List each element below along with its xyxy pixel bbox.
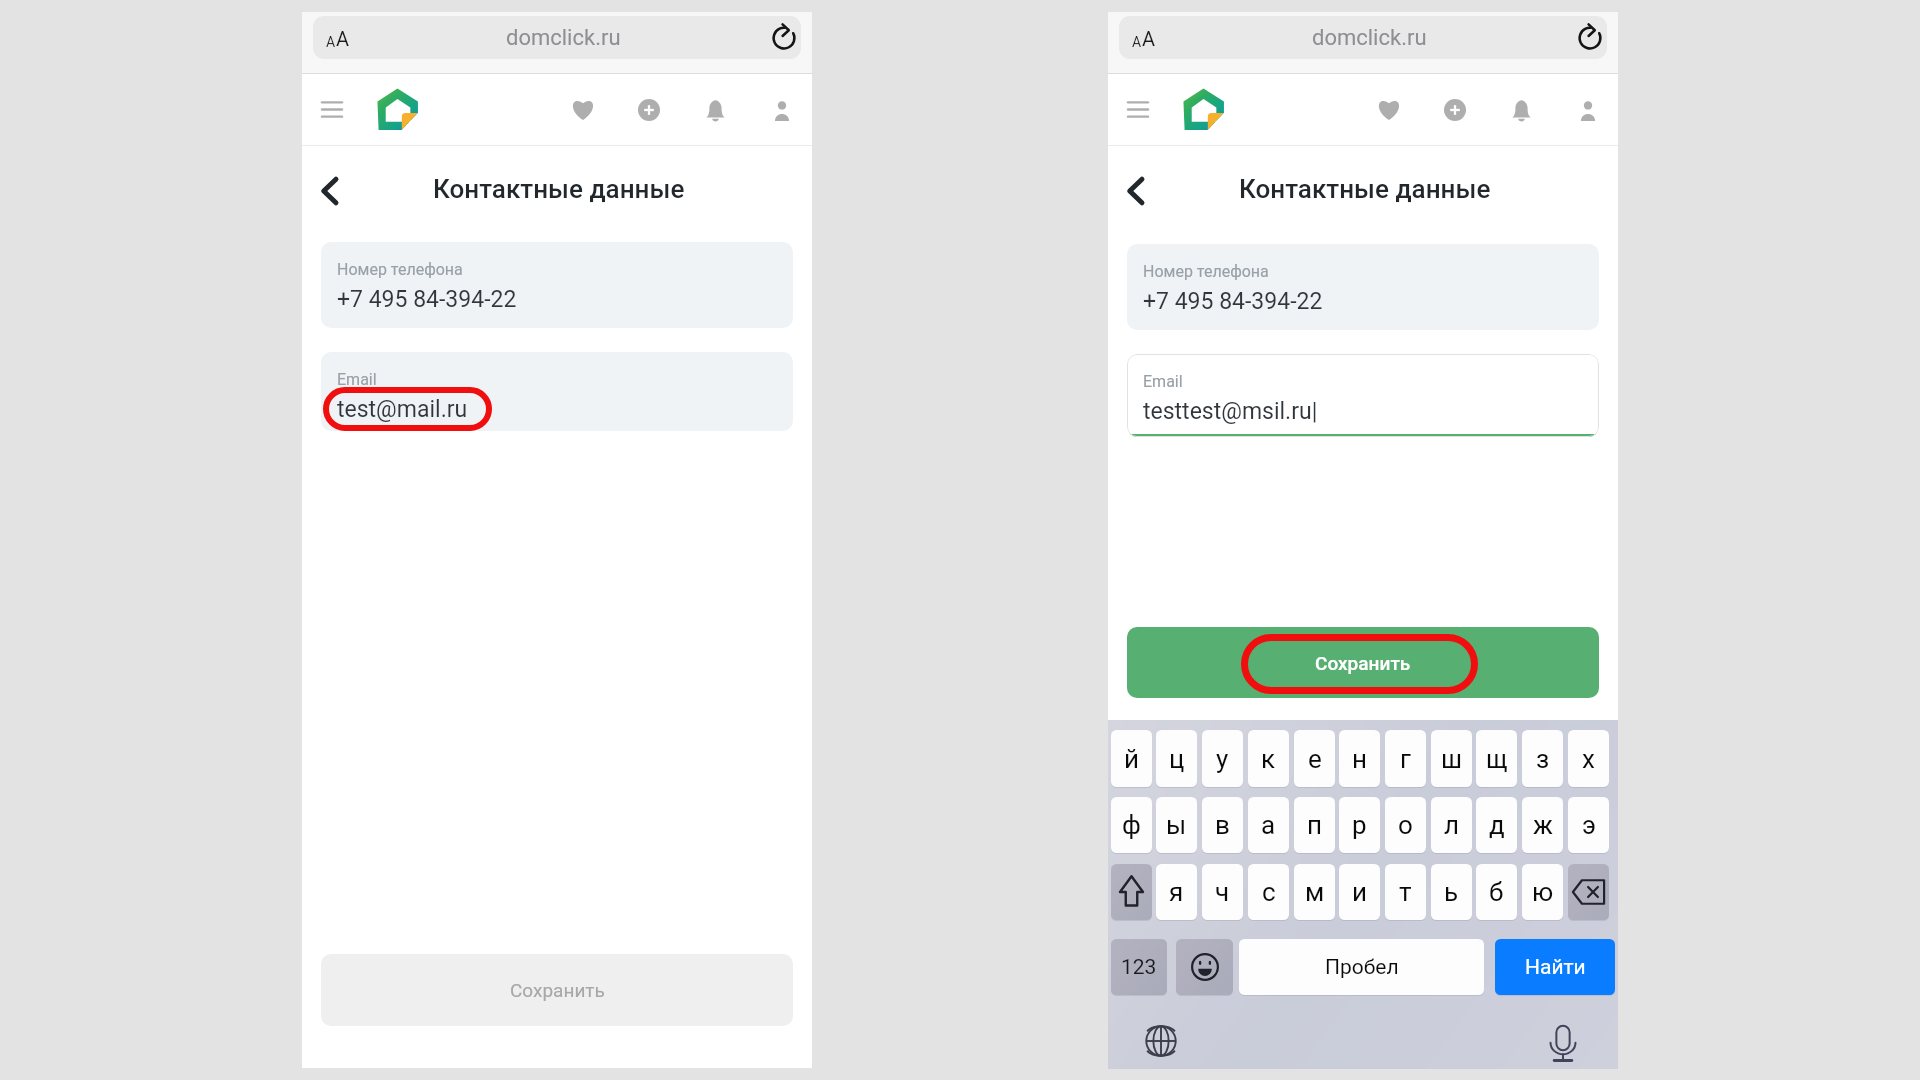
staticText: я <box>1169 877 1184 907</box>
button[interactable]: Add <box>1444 99 1466 121</box>
staticText: р <box>1352 810 1367 840</box>
button[interactable]: х <box>1568 730 1609 787</box>
staticText: ч <box>1215 877 1230 907</box>
button[interactable]: Favorites <box>1377 98 1401 120</box>
button[interactable]: Notifications <box>1512 99 1531 122</box>
button[interactable]: Reload <box>768 20 800 52</box>
staticText: +7 495 84-394-22 <box>337 286 517 313</box>
staticText: Email <box>337 370 377 389</box>
button[interactable]: ж <box>1522 797 1563 853</box>
staticText: в <box>1215 810 1230 840</box>
button[interactable]: к <box>1248 730 1289 787</box>
staticText: у <box>1216 744 1229 774</box>
button[interactable]: Emoji <box>1176 939 1233 995</box>
button[interactable]: Найти <box>1495 939 1615 995</box>
button[interactable]: ь <box>1431 864 1472 920</box>
button[interactable]: Сохранить <box>321 954 793 1026</box>
button[interactable]: A <box>313 16 801 59</box>
button[interactable]: з <box>1522 730 1563 787</box>
staticText: ф <box>1122 810 1141 840</box>
button[interactable]: щ <box>1476 730 1517 787</box>
button[interactable]: Profile <box>1580 100 1596 121</box>
staticText: э <box>1582 810 1596 840</box>
staticText: ц <box>1169 744 1185 774</box>
button[interactable]: ч <box>1202 864 1243 920</box>
button[interactable]: Menu <box>322 101 342 118</box>
staticText: т <box>1399 877 1412 907</box>
staticText: +7 495 84-394-22 <box>1143 288 1323 315</box>
button[interactable]: о <box>1385 797 1426 853</box>
staticText: Пробел <box>1325 955 1399 980</box>
staticText: щ <box>1486 744 1508 774</box>
staticText: б <box>1489 877 1504 907</box>
button[interactable]: а <box>1248 797 1289 853</box>
button[interactable]: й <box>1111 730 1152 787</box>
button[interactable]: Email <box>321 352 793 431</box>
button[interactable]: р <box>1339 797 1380 853</box>
button[interactable]: ы <box>1156 797 1197 853</box>
button[interactable]: Номер телефона <box>321 242 793 328</box>
button[interactable]: с <box>1248 864 1289 920</box>
staticText: ы <box>1166 810 1187 840</box>
button[interactable]: Dictate <box>1550 1025 1576 1062</box>
button[interactable]: г <box>1385 730 1426 787</box>
staticText: Контактные данные <box>433 174 685 204</box>
button[interactable]: ц <box>1156 730 1197 787</box>
button[interactable]: Номер телефона <box>1127 244 1599 330</box>
staticText: Email <box>1143 372 1183 391</box>
button[interactable]: Add <box>638 99 660 121</box>
staticText: Сохранить <box>510 979 605 1001</box>
staticText: domclick.ru <box>506 25 621 51</box>
staticText: к <box>1261 744 1276 774</box>
staticText: Сохранить <box>1315 652 1411 674</box>
staticText: A <box>1132 34 1142 50</box>
staticText: й <box>1124 744 1140 774</box>
button[interactable]: у <box>1202 730 1243 787</box>
button[interactable]: Favorites <box>571 98 595 120</box>
button[interactable]: м <box>1294 864 1335 920</box>
button[interactable]: Back <box>1127 177 1144 205</box>
button[interactable]: Backspace <box>1568 864 1609 920</box>
button[interactable]: л <box>1431 797 1472 853</box>
staticText: а <box>1261 810 1276 840</box>
button[interactable]: б <box>1476 864 1517 920</box>
staticText: з <box>1536 744 1550 774</box>
staticText: ь <box>1444 877 1459 907</box>
button[interactable]: Email <box>1127 354 1599 437</box>
staticText: х <box>1582 744 1595 774</box>
staticText: п <box>1307 810 1323 840</box>
button[interactable]: ш <box>1431 730 1472 787</box>
button[interactable]: Сохранить <box>1127 627 1599 698</box>
staticText: A <box>326 34 336 50</box>
staticText: A <box>336 27 350 50</box>
button[interactable]: Back <box>321 177 338 205</box>
button[interactable]: д <box>1476 797 1517 853</box>
staticText: г <box>1400 744 1411 774</box>
button[interactable]: Numbers <box>1111 939 1167 995</box>
button[interactable]: Notifications <box>706 99 725 122</box>
button[interactable]: и <box>1339 864 1380 920</box>
staticText: н <box>1352 744 1367 774</box>
button[interactable]: Пробел <box>1239 939 1484 995</box>
staticText: A <box>1142 27 1156 50</box>
button[interactable]: Change language <box>1145 1025 1177 1057</box>
staticText: о <box>1398 810 1413 840</box>
button[interactable]: Profile <box>774 100 790 121</box>
button[interactable]: ф <box>1111 797 1152 853</box>
staticText: testtest@msil.ru| <box>1143 398 1318 425</box>
staticText: Номер телефона <box>337 260 463 279</box>
staticText: с <box>1262 877 1276 907</box>
button[interactable]: э <box>1568 797 1609 853</box>
staticText: Номер телефона <box>1143 262 1269 281</box>
button[interactable]: Reload <box>1574 20 1606 52</box>
button[interactable]: Menu <box>1128 101 1148 118</box>
button[interactable]: н <box>1339 730 1380 787</box>
button[interactable]: A <box>1119 16 1607 59</box>
button[interactable]: Shift <box>1111 864 1152 920</box>
button[interactable]: в <box>1202 797 1243 853</box>
button[interactable]: е <box>1294 730 1335 787</box>
button[interactable]: т <box>1385 864 1426 920</box>
button[interactable]: ю <box>1522 864 1563 920</box>
button[interactable]: я <box>1156 864 1197 920</box>
button[interactable]: п <box>1294 797 1335 853</box>
